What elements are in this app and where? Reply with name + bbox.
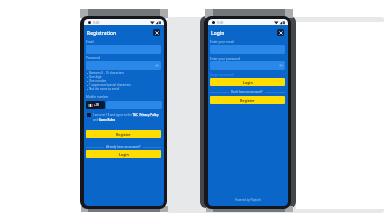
staticText: Registration <box>87 30 117 37</box>
staticText: 1 uppercase/special characters <box>89 83 131 87</box>
staticText: Login <box>211 30 225 37</box>
staticText: Not the same as email <box>89 87 120 91</box>
staticText: Password <box>86 56 100 60</box>
staticText: Powered by Playtech <box>208 198 288 202</box>
button[interactable]: Register <box>86 130 161 138</box>
other: Show password <box>279 64 283 67</box>
staticText: Already have an account? <box>106 145 141 149</box>
staticText: Don't have an account? <box>231 90 263 94</box>
staticText: Between 8 - 16 characters <box>89 71 124 75</box>
button[interactable]: Select country code <box>86 101 105 109</box>
other: Show password <box>155 64 159 67</box>
staticText: Login <box>119 152 129 157</box>
staticText: Register <box>240 98 255 103</box>
button[interactable]: Accept terms <box>87 113 91 117</box>
staticText: +39 <box>94 103 99 107</box>
staticText: Register <box>116 132 131 137</box>
staticText: One number <box>89 79 107 83</box>
staticText: Enter your email <box>210 40 234 44</box>
button[interactable]: Close <box>153 29 160 36</box>
staticText: One digit <box>89 75 102 79</box>
staticText: Login <box>243 80 253 85</box>
staticText: 9:30 <box>93 21 100 25</box>
staticText: Mobile number <box>86 95 109 99</box>
button[interactable]: Close <box>277 29 284 36</box>
staticText: Enter your password <box>210 57 241 61</box>
staticText: I am over 18 and agree to the T&C, Priva… <box>93 113 161 121</box>
button[interactable]: Forgot password? <box>210 73 235 77</box>
button[interactable]: Show password <box>86 61 161 70</box>
button[interactable]: Login <box>210 78 285 86</box>
staticText: Email <box>86 40 94 44</box>
staticText: 9:30 <box>217 21 224 25</box>
button[interactable]: Login <box>86 150 161 158</box>
button[interactable]: Register <box>210 96 285 104</box>
button[interactable]: Show password <box>210 61 285 70</box>
